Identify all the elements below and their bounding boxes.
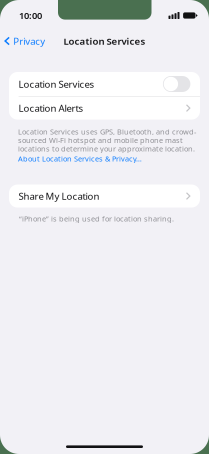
staticText: Location Services — [63, 34, 145, 48]
button[interactable]: Share My Location — [9, 184, 200, 207]
staticText: “iPhone” is being used for location shar… — [19, 213, 174, 223]
button[interactable]: Location Alerts — [9, 97, 200, 120]
staticText: 10:00 — [19, 9, 42, 22]
staticText: Privacy — [13, 34, 45, 48]
staticText: About Location Services & Privacy… — [18, 154, 142, 164]
staticText: Location Services uses GPS, Bluetooth, a… — [18, 127, 196, 154]
staticText: Share My Location — [19, 189, 100, 203]
staticText: Location Alerts — [19, 102, 84, 115]
button[interactable]: Privacy — [0, 31, 51, 51]
button[interactable]: Location Services — [9, 72, 200, 96]
button[interactable]: About Location Services & Privacy… — [18, 154, 142, 164]
staticText: Location Services — [19, 77, 95, 91]
